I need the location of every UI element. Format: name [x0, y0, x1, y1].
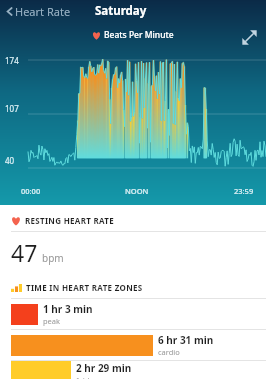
- staticText: RESTING HEART RATE: [25, 215, 115, 226]
- button[interactable]: 1 hr 3 min: [0, 299, 266, 329]
- staticText: 00:00: [21, 186, 41, 196]
- staticText: NOON: [125, 186, 149, 196]
- staticText: TIME IN HEART RATE ZONES: [26, 282, 143, 293]
- staticText: fat burn: [76, 375, 105, 379]
- staticText: 174: [5, 55, 19, 66]
- button[interactable]: Heart Rate: [0, 2, 75, 21]
- staticText: Saturday: [95, 3, 147, 19]
- staticText: cardio: [158, 347, 180, 357]
- staticText: 23:59: [234, 186, 254, 196]
- button[interactable]: RESTING HEART RATE: [0, 205, 266, 279]
- staticText: Heart Rate: [15, 4, 71, 19]
- staticText: 40: [5, 155, 15, 166]
- staticText: 107: [5, 103, 19, 114]
- staticText: 1 hr 3 min: [43, 302, 93, 316]
- button[interactable]: Expand chart: [242, 30, 257, 45]
- staticText: Beats Per Minute: [104, 29, 174, 41]
- staticText: 2 hr 29 min: [76, 361, 132, 375]
- staticText: bpm: [42, 251, 64, 265]
- button[interactable]: 2 hr 29 min: [0, 361, 266, 379]
- button[interactable]: 6 hr 31 min: [0, 330, 266, 360]
- staticText: peak: [43, 316, 61, 326]
- staticText: 6 hr 31 min: [158, 333, 214, 347]
- staticText: 47: [11, 237, 38, 268]
